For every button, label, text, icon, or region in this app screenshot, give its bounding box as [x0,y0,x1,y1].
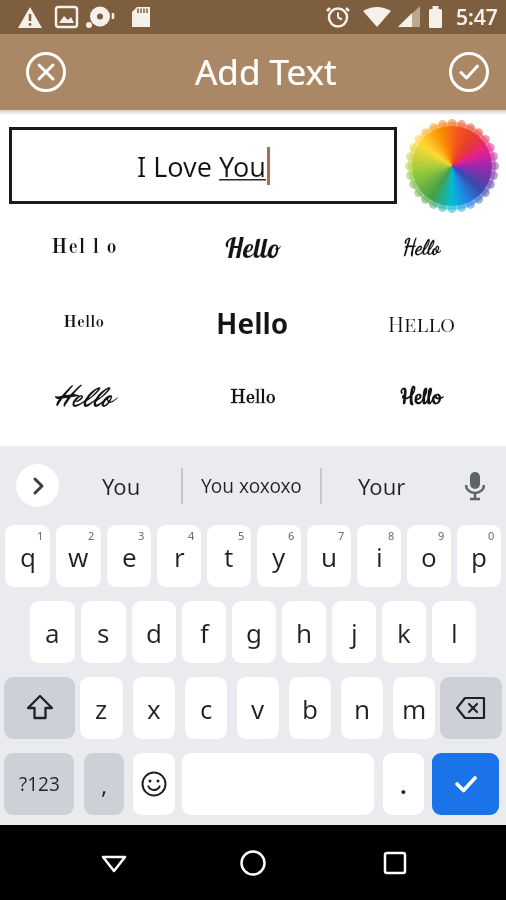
button[interactable]: Hel l o [0,210,168,285]
button[interactable]: x [133,677,175,739]
button[interactable]: a [30,601,75,663]
button[interactable]: g [232,601,276,663]
staticText: Add Text [195,48,337,96]
staticText: y [272,539,286,574]
button[interactable]: n [341,677,383,739]
staticText: 4 [188,528,195,543]
staticText: Hello [224,231,281,265]
button[interactable]: f [182,601,226,663]
button[interactable]: Hello [168,360,337,435]
button[interactable]: i [357,525,401,587]
button[interactable]: l [432,601,476,663]
button[interactable]: Hello [168,210,337,285]
button[interactable]: h [282,601,326,663]
staticText: Hel l o [51,238,118,258]
staticText: t [224,539,234,574]
staticText: z [95,691,108,726]
staticText: Hello [400,383,443,413]
button[interactable]: Hello [0,285,168,360]
staticText: q [20,539,36,574]
button[interactable] [96,845,132,881]
button[interactable]: b [289,677,331,739]
staticText: Hello [216,304,289,342]
staticText: 8 [388,528,395,543]
button[interactable]: c [185,677,227,739]
staticText: j [351,615,358,650]
button[interactable]: You [62,451,180,520]
staticText: n [354,691,371,726]
staticText: 6 [288,528,295,543]
button[interactable]: k [382,601,426,663]
button[interactable] [440,677,502,739]
staticText: c [200,691,213,726]
staticText: I Love You [137,148,267,185]
staticText: 3 [138,528,145,543]
staticText: Hello [403,235,441,260]
button[interactable]: j [332,601,376,663]
staticText: p [471,539,487,574]
button[interactable]: Your [322,451,442,520]
staticText: g [246,615,262,650]
button[interactable]: m [393,677,435,739]
staticText: 1 [37,528,44,543]
staticText: k [397,615,411,650]
staticText: i [376,539,383,574]
button[interactable]: r [157,525,201,587]
staticText: h [296,615,313,650]
button[interactable]: v [237,677,279,739]
button[interactable] [405,119,499,213]
button[interactable]: . [383,753,424,815]
button[interactable] [235,845,271,881]
staticText: a [45,615,60,650]
button[interactable]: p [457,525,501,587]
button[interactable] [16,464,59,507]
staticText: 0 [488,528,495,543]
button[interactable]: ?123 [4,753,74,815]
staticText: w [68,539,89,574]
button[interactable]: t [207,525,251,587]
button[interactable]: I Love You [9,127,397,204]
staticText: b [302,691,318,726]
button[interactable]: Hello [337,210,506,285]
button[interactable] [447,50,491,94]
button[interactable]: s [81,601,126,663]
button[interactable]: You xoxoxo [183,451,319,520]
staticText: ?123 [19,771,60,797]
button[interactable]: d [132,601,176,663]
staticText: You xoxoxo [201,473,302,499]
button[interactable]: Hello [168,285,337,360]
staticText: Hello [55,377,113,419]
button[interactable]: y [257,525,301,587]
button[interactable] [24,50,68,94]
staticText: r [174,539,185,574]
staticText: x [147,691,161,726]
button[interactable]: Hello [0,360,168,435]
button[interactable] [432,753,499,815]
button[interactable]: q [5,525,50,587]
button[interactable]: Hello [337,285,506,360]
staticText: 5:47 [456,3,498,32]
button[interactable] [458,469,492,503]
button[interactable] [133,753,175,815]
staticText: d [146,615,162,650]
button[interactable]: w [56,525,101,587]
button[interactable]: z [80,677,123,739]
button[interactable]: , [84,753,124,815]
button[interactable] [377,845,413,881]
staticText: o [421,539,437,574]
button[interactable]: u [307,525,351,587]
button[interactable]: o [407,525,451,587]
staticText: You [102,471,141,501]
staticText: . [400,768,407,801]
staticText: s [97,615,110,650]
staticText: Hello [63,314,105,331]
staticText: 5 [238,528,245,543]
button[interactable]: e [107,525,151,587]
button[interactable] [4,677,75,739]
staticText: Your [358,471,406,501]
button[interactable]: Hello [337,360,506,435]
staticText: e [122,539,137,574]
staticText: Hello [230,388,276,408]
staticText: f [200,615,209,650]
